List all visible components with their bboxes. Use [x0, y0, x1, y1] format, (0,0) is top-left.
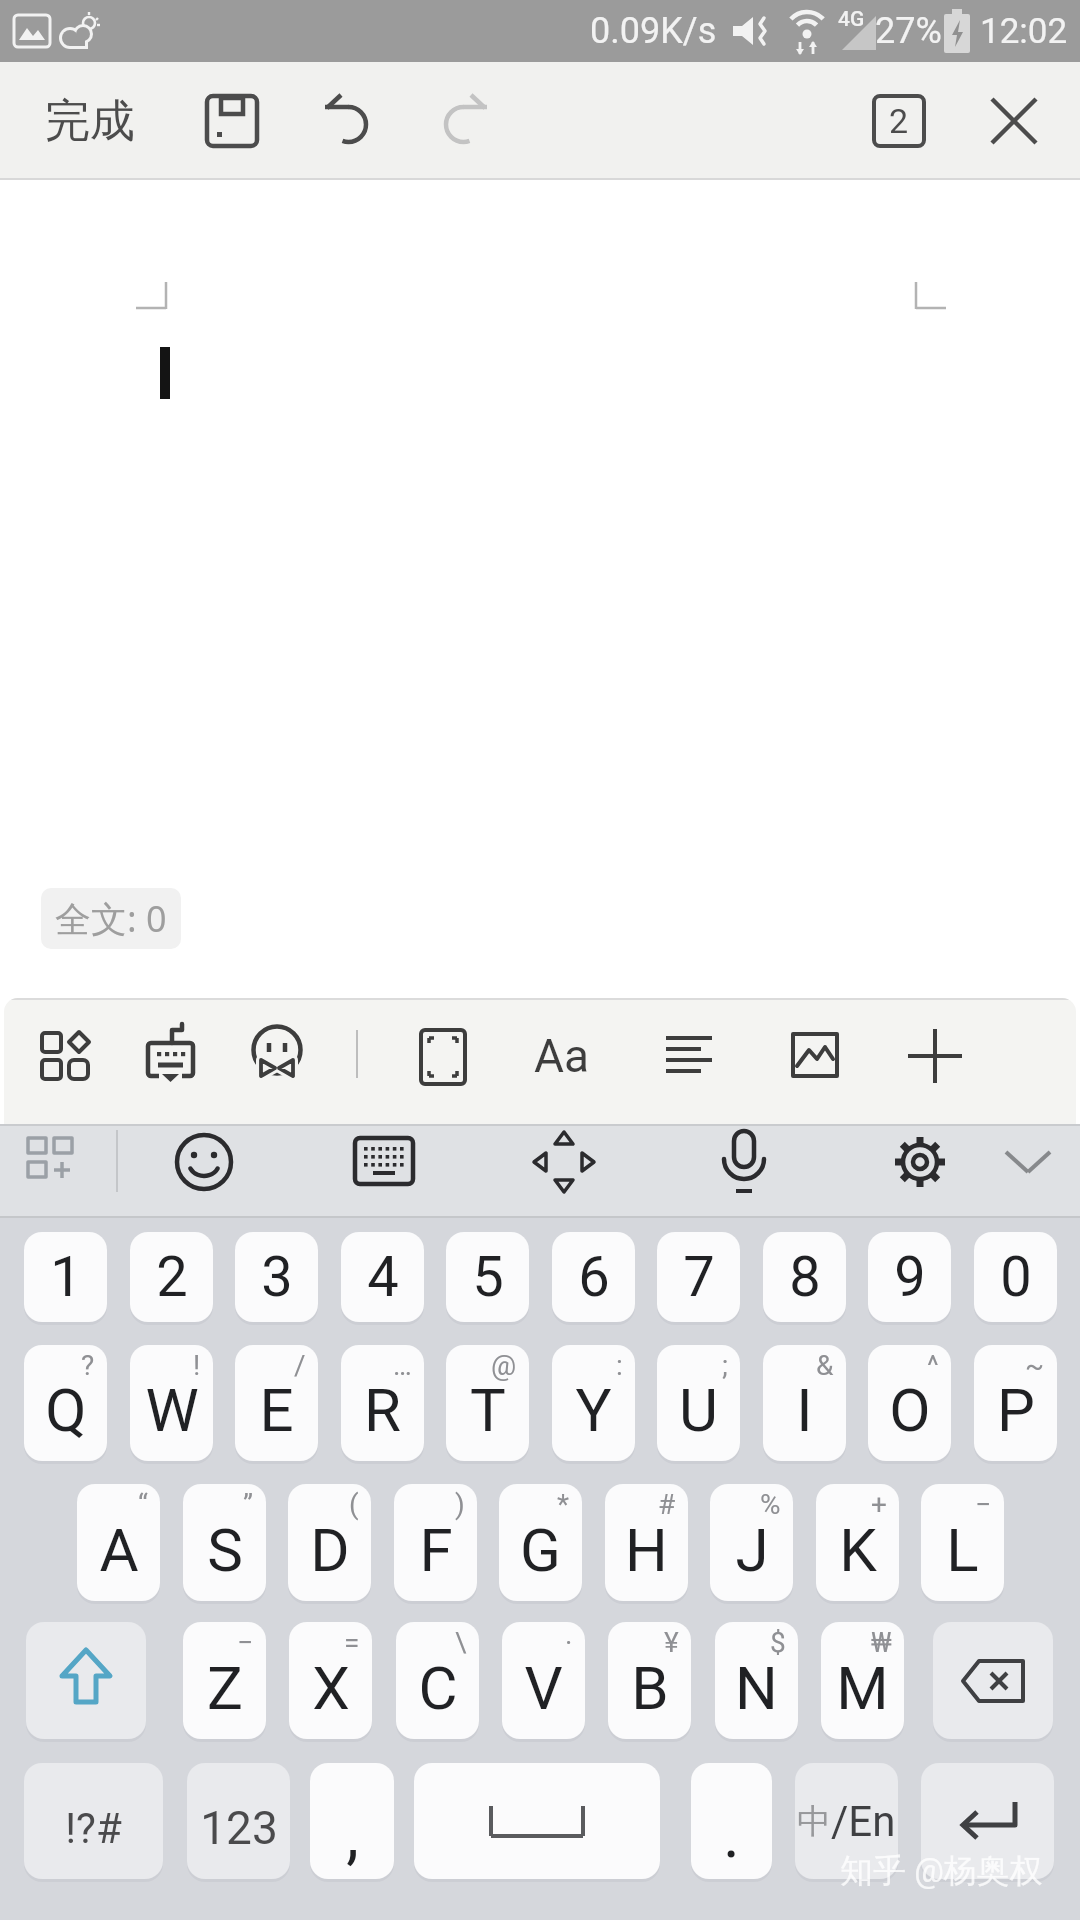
button[interactable]: Q	[24, 1345, 107, 1461]
button[interactable]: E	[235, 1345, 318, 1461]
button[interactable]: Y	[552, 1345, 635, 1461]
button[interactable]: R	[341, 1345, 424, 1461]
button[interactable]: 中	[795, 1763, 898, 1879]
staticText: 中	[797, 1800, 831, 1843]
button[interactable]: K	[816, 1484, 899, 1601]
button[interactable]: ,	[310, 1763, 394, 1879]
staticText: !?#	[65, 1804, 122, 1853]
staticText: 0.09K/s	[590, 10, 717, 52]
staticText: 12:02	[980, 11, 1068, 52]
button[interactable]: 7	[657, 1232, 740, 1322]
staticText: 27%	[875, 10, 942, 52]
button[interactable]: .	[691, 1763, 772, 1879]
button[interactable]: C	[396, 1622, 479, 1739]
button[interactable]	[20, 1126, 94, 1198]
button[interactable]: U	[657, 1345, 740, 1461]
button[interactable]	[994, 1132, 1060, 1192]
button[interactable]: G	[499, 1484, 582, 1601]
button[interactable]: V	[502, 1622, 585, 1739]
button[interactable]: 3	[235, 1232, 318, 1322]
button[interactable]	[528, 1126, 600, 1198]
button[interactable]: O	[868, 1345, 951, 1461]
button[interactable]	[708, 1126, 780, 1198]
staticText: …	[393, 1349, 412, 1382]
button[interactable]: P	[974, 1345, 1057, 1461]
button[interactable]	[921, 1763, 1054, 1879]
button[interactable]	[884, 1126, 956, 1198]
staticText: F	[419, 1515, 453, 1585]
button[interactable]: J	[710, 1484, 793, 1601]
staticText: M	[836, 1653, 889, 1723]
staticText: J	[735, 1515, 769, 1585]
button[interactable]: F	[394, 1484, 477, 1601]
button[interactable]: 4	[341, 1232, 424, 1322]
button[interactable]: 1	[24, 1232, 107, 1322]
staticText: S	[207, 1515, 243, 1585]
button[interactable]: 5	[446, 1232, 529, 1322]
button[interactable]: Z	[183, 1622, 266, 1739]
staticText: /En	[831, 1797, 896, 1846]
button[interactable]: H	[605, 1484, 688, 1601]
button[interactable]	[900, 1021, 970, 1091]
button[interactable]	[26, 1622, 146, 1739]
staticText: ~	[1025, 1349, 1045, 1382]
button[interactable]: 0	[974, 1232, 1057, 1322]
button[interactable]: 123	[187, 1763, 290, 1879]
staticText: )	[455, 1488, 465, 1521]
button[interactable]: 2	[130, 1232, 213, 1322]
staticText: ·	[565, 1626, 573, 1659]
staticText: 8	[789, 1244, 821, 1310]
staticText: #	[658, 1488, 676, 1521]
button[interactable]: B	[608, 1622, 691, 1739]
button[interactable]: L	[921, 1484, 1004, 1601]
button[interactable]	[986, 93, 1042, 149]
button[interactable]	[168, 1126, 240, 1198]
button[interactable]	[408, 1021, 478, 1091]
staticText: 1	[50, 1244, 82, 1310]
button[interactable]: A	[77, 1484, 160, 1601]
staticText: H	[625, 1515, 668, 1585]
staticText: =	[344, 1626, 360, 1659]
staticText: A	[99, 1515, 139, 1585]
staticText: ^	[927, 1349, 939, 1382]
staticText: L	[946, 1515, 979, 1585]
button[interactable]	[202, 91, 262, 151]
button[interactable]: T	[446, 1345, 529, 1461]
staticText: @	[491, 1349, 517, 1382]
button[interactable]: 2	[872, 94, 926, 148]
staticText: ”	[243, 1488, 254, 1521]
button[interactable]: 8	[763, 1232, 846, 1322]
button[interactable]: D	[288, 1484, 371, 1601]
button[interactable]: 6	[552, 1232, 635, 1322]
button[interactable]: Aa	[524, 1021, 600, 1091]
button[interactable]	[136, 1018, 206, 1094]
button[interactable]: W	[130, 1345, 213, 1461]
staticText: N	[735, 1653, 778, 1723]
button[interactable]	[780, 1021, 850, 1091]
button[interactable]	[348, 1126, 420, 1198]
staticText: &	[816, 1349, 834, 1382]
button[interactable]: 9	[868, 1232, 951, 1322]
button[interactable]	[414, 1763, 660, 1879]
staticText: 2	[889, 101, 909, 141]
button[interactable]: M	[821, 1622, 904, 1739]
button[interactable]	[318, 88, 378, 152]
staticText: −	[237, 1626, 254, 1659]
staticText: 完成	[45, 93, 135, 150]
button[interactable]	[933, 1622, 1053, 1739]
button[interactable]	[655, 1021, 725, 1091]
button[interactable]	[30, 1021, 100, 1091]
staticText: 知乎 @杨奥权	[840, 1850, 1043, 1892]
button[interactable]: 完成	[30, 85, 150, 157]
button[interactable]: X	[289, 1622, 372, 1739]
button[interactable]	[436, 88, 496, 152]
staticText: G	[520, 1515, 561, 1585]
button[interactable]: S	[183, 1484, 266, 1601]
staticText: U	[679, 1375, 718, 1445]
button[interactable]: I	[763, 1345, 846, 1461]
button[interactable]	[244, 1021, 314, 1091]
staticText: Z	[207, 1653, 243, 1723]
button[interactable]: !?#	[24, 1763, 163, 1879]
button[interactable]: N	[715, 1622, 798, 1739]
staticText: 0	[1000, 1244, 1032, 1310]
